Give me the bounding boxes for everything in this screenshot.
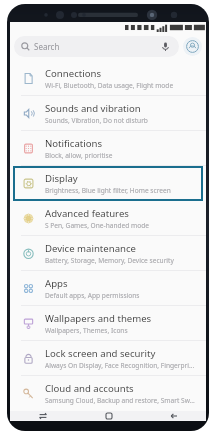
button[interactable]: Back: [141, 411, 206, 421]
staticText: Always On Display, Face Recognition, Fin…: [45, 361, 195, 370]
staticText: Wallpapers, Themes, Icons: [45, 326, 128, 335]
staticText: Cloud and accounts: [45, 382, 134, 395]
staticText: Default apps, App permissions: [45, 291, 140, 300]
staticText: Sounds, Vibration, Do not disturb: [45, 116, 148, 125]
button[interactable]: Cloud and accounts: [10, 376, 206, 411]
button[interactable]: Lock screen and security: [10, 341, 206, 376]
button[interactable]: Display: [13, 166, 203, 201]
staticText: Device maintenance: [45, 242, 136, 255]
staticText: Notifications: [45, 137, 103, 150]
staticText: Search: [34, 41, 60, 52]
button[interactable]: Sounds and vibration: [10, 96, 206, 131]
button[interactable]: Search: [14, 36, 179, 57]
button[interactable]: Voice search: [159, 40, 172, 53]
staticText: Block, allow, prioritise: [45, 151, 113, 160]
button[interactable]: Advanced features: [10, 201, 206, 236]
staticText: Apps: [45, 277, 68, 290]
staticText: Sounds and vibration: [45, 102, 141, 115]
staticText: S Pen, Games, One-handed mode: [45, 221, 150, 230]
button[interactable]: Notifications: [10, 131, 206, 166]
button[interactable]: Home: [76, 411, 141, 421]
button[interactable]: Apps: [10, 271, 206, 306]
button[interactable]: Recents: [10, 411, 76, 421]
staticText: Advanced features: [45, 207, 129, 220]
button[interactable]: Wallpapers and themes: [10, 306, 206, 341]
staticText: Brightness, Blue light filter, Home scre…: [45, 186, 171, 195]
staticText: Lock screen and security: [45, 347, 156, 360]
button[interactable]: Connections: [10, 61, 206, 96]
staticText: Wallpapers and themes: [45, 312, 152, 325]
staticText: Display: [45, 172, 78, 185]
button[interactable]: Device maintenance: [10, 236, 206, 271]
staticText: Battery, Storage, Memory, Device securit…: [45, 256, 174, 265]
staticText: Wi-Fi, Bluetooth, Data usage, Flight mod…: [45, 81, 174, 90]
staticText: Samsung Cloud, Backup and restore, Smart…: [45, 396, 195, 405]
button[interactable]: Account: [183, 37, 202, 56]
staticText: Connections: [45, 67, 102, 80]
